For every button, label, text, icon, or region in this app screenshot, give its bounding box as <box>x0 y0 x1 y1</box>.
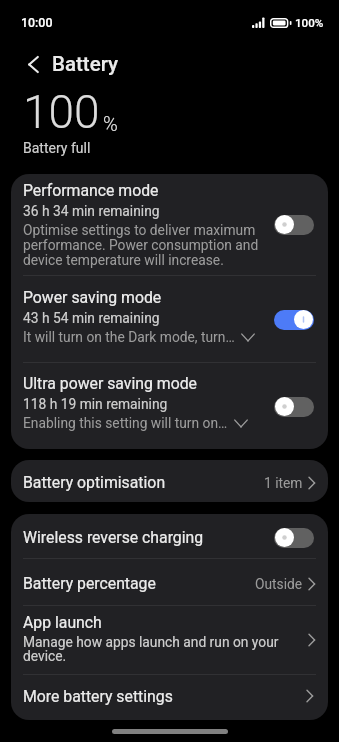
button[interactable]: Ultra power saving mode <box>274 396 314 417</box>
button[interactable]: Performance mode <box>11 174 328 275</box>
staticText: Battery percentage <box>23 574 156 593</box>
button[interactable]: Wireless reverse charging <box>274 527 314 548</box>
button[interactable]: More battery settings <box>11 675 328 720</box>
staticText: 36 h 34 min remaining <box>23 203 160 219</box>
staticText: Wireless reverse charging <box>23 528 204 547</box>
button[interactable]: App launch <box>11 606 328 674</box>
staticText: Manage how apps launch and run on your d… <box>23 634 286 665</box>
staticText: 100 <box>23 85 100 139</box>
staticText: Battery full <box>23 140 91 156</box>
button[interactable]: Power saving mode <box>274 309 314 330</box>
staticText: 10:00 <box>21 15 53 30</box>
button[interactable]: Power saving mode <box>11 276 328 362</box>
button[interactable]: Wireless reverse charging <box>11 514 328 558</box>
staticText: Power saving mode <box>23 288 162 307</box>
staticText: 100% <box>295 16 324 30</box>
staticText: Outside <box>255 576 303 592</box>
staticText: Battery optimisation <box>23 473 166 492</box>
staticText: Optimise settings to deliver maximum per… <box>23 222 264 268</box>
button[interactable]: Ultra power saving mode <box>11 363 328 449</box>
staticText: Ultra power saving mode <box>23 374 197 393</box>
staticText: 43 h 54 min remaining <box>23 310 160 326</box>
staticText: More battery settings <box>23 687 173 706</box>
staticText: 1 item <box>264 475 303 491</box>
button[interactable]: Back <box>28 53 39 75</box>
staticText: 118 h 19 min remaining <box>23 396 168 412</box>
staticText: Battery <box>52 52 119 76</box>
staticText: App launch <box>23 613 102 632</box>
staticText: Enabling this setting will turn on… <box>23 415 228 431</box>
button[interactable]: Battery percentage <box>11 559 328 605</box>
staticText: % <box>103 112 118 135</box>
staticText: It will turn on the Dark mode, turn… <box>23 329 235 345</box>
staticText: Performance mode <box>23 181 159 200</box>
button[interactable]: Battery optimisation <box>11 460 328 502</box>
button[interactable]: Performance mode <box>274 214 314 235</box>
